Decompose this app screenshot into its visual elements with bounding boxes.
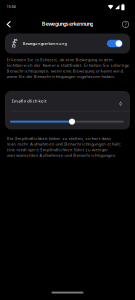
staticText: wenn Sie die Benachrichtigungen zugelass… [6,74,115,79]
button[interactable]: Empfindlichkeit einstellen [5,111,130,129]
staticText: eine niedrigere Empfindlichkeit führt zu… [6,147,108,152]
staticText: Empfindlichkeit [11,98,47,103]
button[interactable]: Hilfe [121,20,129,28]
staticText: Bewegungserkennung [42,20,93,27]
staticText: Die Empfindlichkeit höher zu stellen, si… [6,136,111,141]
staticText: unerwünschten Aufnahmen und Benachrichti… [6,152,116,158]
staticText: Sichtbereich der Kamera stattfindet. Erh… [6,63,129,68]
staticText: 15:04 [7,5,16,9]
button[interactable]: Bewegungserkennung aktiviert [107,40,122,47]
button[interactable]: Empfindlichkeit [5,91,130,111]
button[interactable]: Zurück [6,21,12,28]
staticText: Erkennen Sie in Echtzeit, ob eine Bewegu… [6,57,113,62]
staticText: Bewegungserkennung [22,41,66,46]
staticText: ? [124,21,126,28]
staticText: Benachrichtigungen, wenn eine Bewegung e… [6,68,124,73]
staticText: man mehr Aufnahmen und Benachrichtigunge… [6,141,121,147]
